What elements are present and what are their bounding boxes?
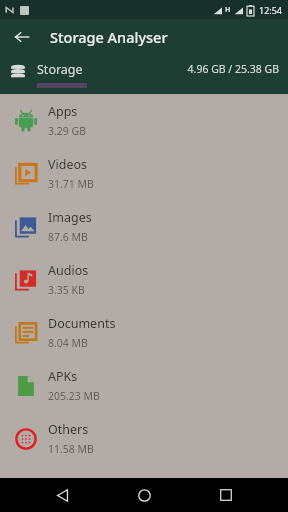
staticText: Documents: [48, 315, 116, 332]
staticText: Images: [48, 209, 92, 226]
staticText: 11.58 MB: [48, 442, 94, 456]
staticText: Apps: [48, 103, 78, 120]
staticText: H: [225, 5, 231, 15]
button[interactable]: Back: [42, 478, 82, 512]
staticText: 205.23 MB: [48, 389, 100, 403]
button[interactable]: Documents: [0, 306, 288, 359]
staticText: 3.35 KB: [48, 283, 85, 297]
button[interactable]: Videos: [0, 147, 288, 200]
button[interactable]: Home: [124, 478, 164, 512]
button[interactable]: Images: [0, 200, 288, 253]
staticText: 4.96 GB / 25.38 GB: [187, 62, 279, 76]
button[interactable]: Apps: [0, 94, 288, 147]
staticText: Audios: [48, 262, 89, 279]
staticText: 87.6 MB: [48, 230, 88, 244]
button[interactable]: Back: [8, 23, 36, 51]
button[interactable]: Storage: [37, 61, 83, 78]
staticText: 8.04 MB: [48, 336, 88, 350]
staticText: Videos: [48, 156, 88, 173]
staticText: APKs: [48, 368, 78, 385]
button[interactable]: Audios: [0, 253, 288, 306]
staticText: 31.71 MB: [48, 177, 94, 191]
button[interactable]: APKs: [0, 359, 288, 412]
staticText: 12:54: [259, 4, 283, 16]
staticText: 3.29 GB: [48, 124, 87, 138]
button[interactable]: Recent apps: [206, 478, 246, 512]
staticText: Storage Analyser: [50, 27, 168, 47]
button[interactable]: Others: [0, 412, 288, 465]
staticText: Others: [48, 421, 89, 438]
